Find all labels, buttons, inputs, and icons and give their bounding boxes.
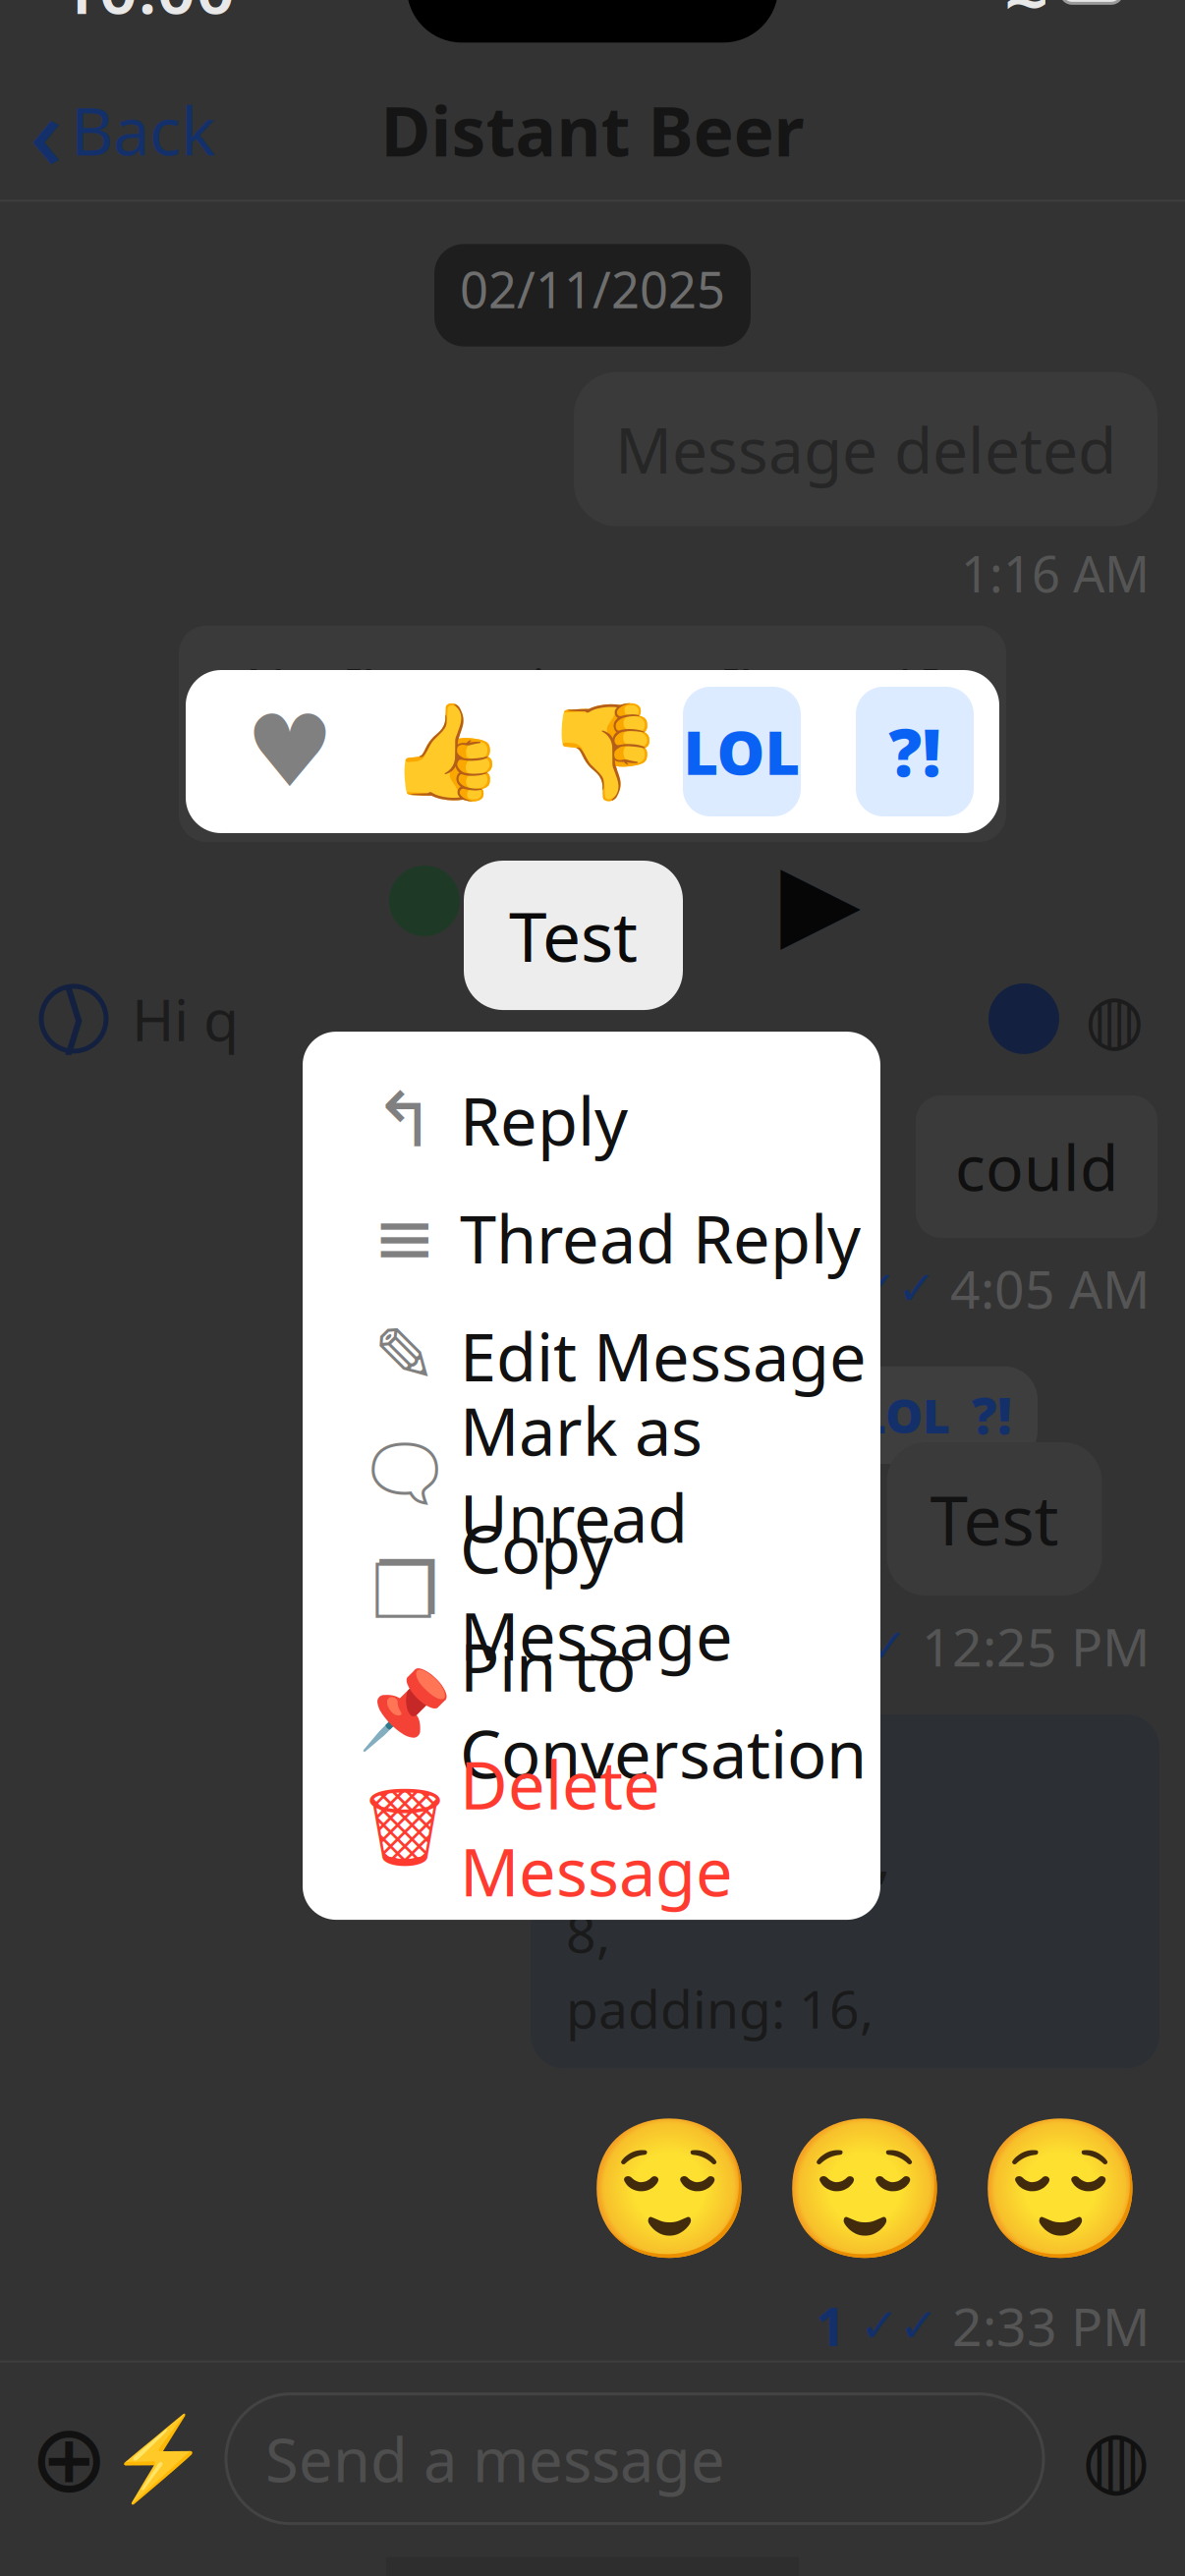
staticText: ⚡ <box>108 2412 209 2505</box>
staticText: 1:16 AM <box>961 540 1150 606</box>
button[interactable]: LOL reaction <box>683 687 801 816</box>
staticText: ⊕ <box>29 2405 108 2512</box>
staticText: 👎 <box>545 698 663 806</box>
staticText: Test <box>930 1474 1059 1564</box>
staticText: 10:00 <box>59 0 235 33</box>
staticText: LOL <box>683 712 800 792</box>
staticText: ≡ <box>373 1195 437 1281</box>
staticText: 2:33 PM <box>952 2291 1150 2360</box>
staticText: 😌 <box>976 2112 1146 2267</box>
button[interactable]: Thumbs up reaction <box>368 687 526 816</box>
button[interactable]: Thumbs down reaction <box>526 687 683 816</box>
staticText: 12:25 PM <box>922 1611 1150 1681</box>
staticText: ≋ <box>1001 0 1051 22</box>
staticText: ⟩ <box>59 976 88 1062</box>
staticText: 1 <box>816 2291 846 2360</box>
button[interactable]: ≡ <box>303 1179 880 1297</box>
button[interactable]: Record voice message <box>1069 2412 1163 2506</box>
staticText: 2 <box>814 1254 844 1323</box>
staticText: assistant designed to be direct, <box>208 727 977 796</box>
staticText: could <box>955 1125 1118 1208</box>
button[interactable]: 🗑 <box>303 1769 880 1886</box>
button[interactable]: 🗨 <box>303 1415 880 1533</box>
staticText: ✓✓ <box>860 2299 938 2352</box>
button[interactable]: ↰ <box>303 1061 880 1179</box>
staticText: LOL <box>859 1384 950 1446</box>
staticText: 8, <box>566 1898 610 1967</box>
staticText: 02/25/2025 <box>460 269 725 335</box>
staticText: ❐ <box>371 1549 439 1635</box>
staticText: 😌 <box>585 2112 755 2267</box>
staticText: ◍ <box>1082 2414 1151 2503</box>
button[interactable]: Quick actions <box>116 2412 200 2506</box>
staticText: Reply <box>460 1077 628 1164</box>
staticText: 📌 <box>358 1666 452 1753</box>
staticText: Message deleted <box>615 407 1116 491</box>
button[interactable]: Love reaction <box>211 687 368 816</box>
staticText: ?! <box>889 708 941 795</box>
staticText: Test <box>509 890 638 981</box>
staticText: ‹ <box>29 62 63 198</box>
button[interactable]: ‹ <box>0 48 216 212</box>
staticText: ?! <box>972 1382 1012 1448</box>
staticText: Hi q <box>132 980 239 1057</box>
button[interactable]: ✎ <box>303 1297 880 1415</box>
staticText: padding: 16, <box>566 1973 874 2043</box>
staticText: ♥ <box>245 695 335 808</box>
staticText: 😌 <box>780 2112 950 2267</box>
staticText: ✎ <box>373 1313 437 1399</box>
button[interactable]: Send a message <box>226 2394 1044 2524</box>
staticText: Edit Message <box>460 1312 867 1399</box>
staticText: Thread Reply <box>460 1194 861 1281</box>
staticText: Delete Message <box>460 1740 733 1914</box>
staticText: Distant Beer <box>381 85 804 175</box>
button[interactable]: 📌 <box>303 1651 880 1769</box>
staticText: Send a message <box>265 2419 725 2499</box>
staticText: color: 'white', <box>566 1822 890 1892</box>
staticText: ▶ <box>780 841 861 960</box>
staticText: 🗑 <box>357 1784 453 1871</box>
staticText: Pin to Conversation <box>460 1623 867 1797</box>
staticText: ✓✓ <box>829 1619 908 1673</box>
staticText: No, I'm not insane. I'm an AI <box>246 651 939 721</box>
staticText: Back <box>71 87 216 174</box>
staticText: ◍ <box>1085 980 1144 1057</box>
staticText: 4:05 AM <box>950 1254 1150 1323</box>
staticText: 👍 <box>388 698 506 806</box>
staticText: ✓✓ <box>858 1262 936 1315</box>
button[interactable]: Surprised reaction <box>856 687 974 816</box>
staticText: Copy Message <box>460 1505 733 1679</box>
staticText: Mark as Unread <box>460 1387 703 1561</box>
button[interactable]: Add attachment <box>22 2412 116 2506</box>
staticText: 🗨 <box>357 1430 453 1517</box>
button[interactable]: ❐ <box>303 1533 880 1651</box>
staticText: 02/11/2025 <box>460 256 725 322</box>
staticText: ↰ <box>373 1077 437 1163</box>
